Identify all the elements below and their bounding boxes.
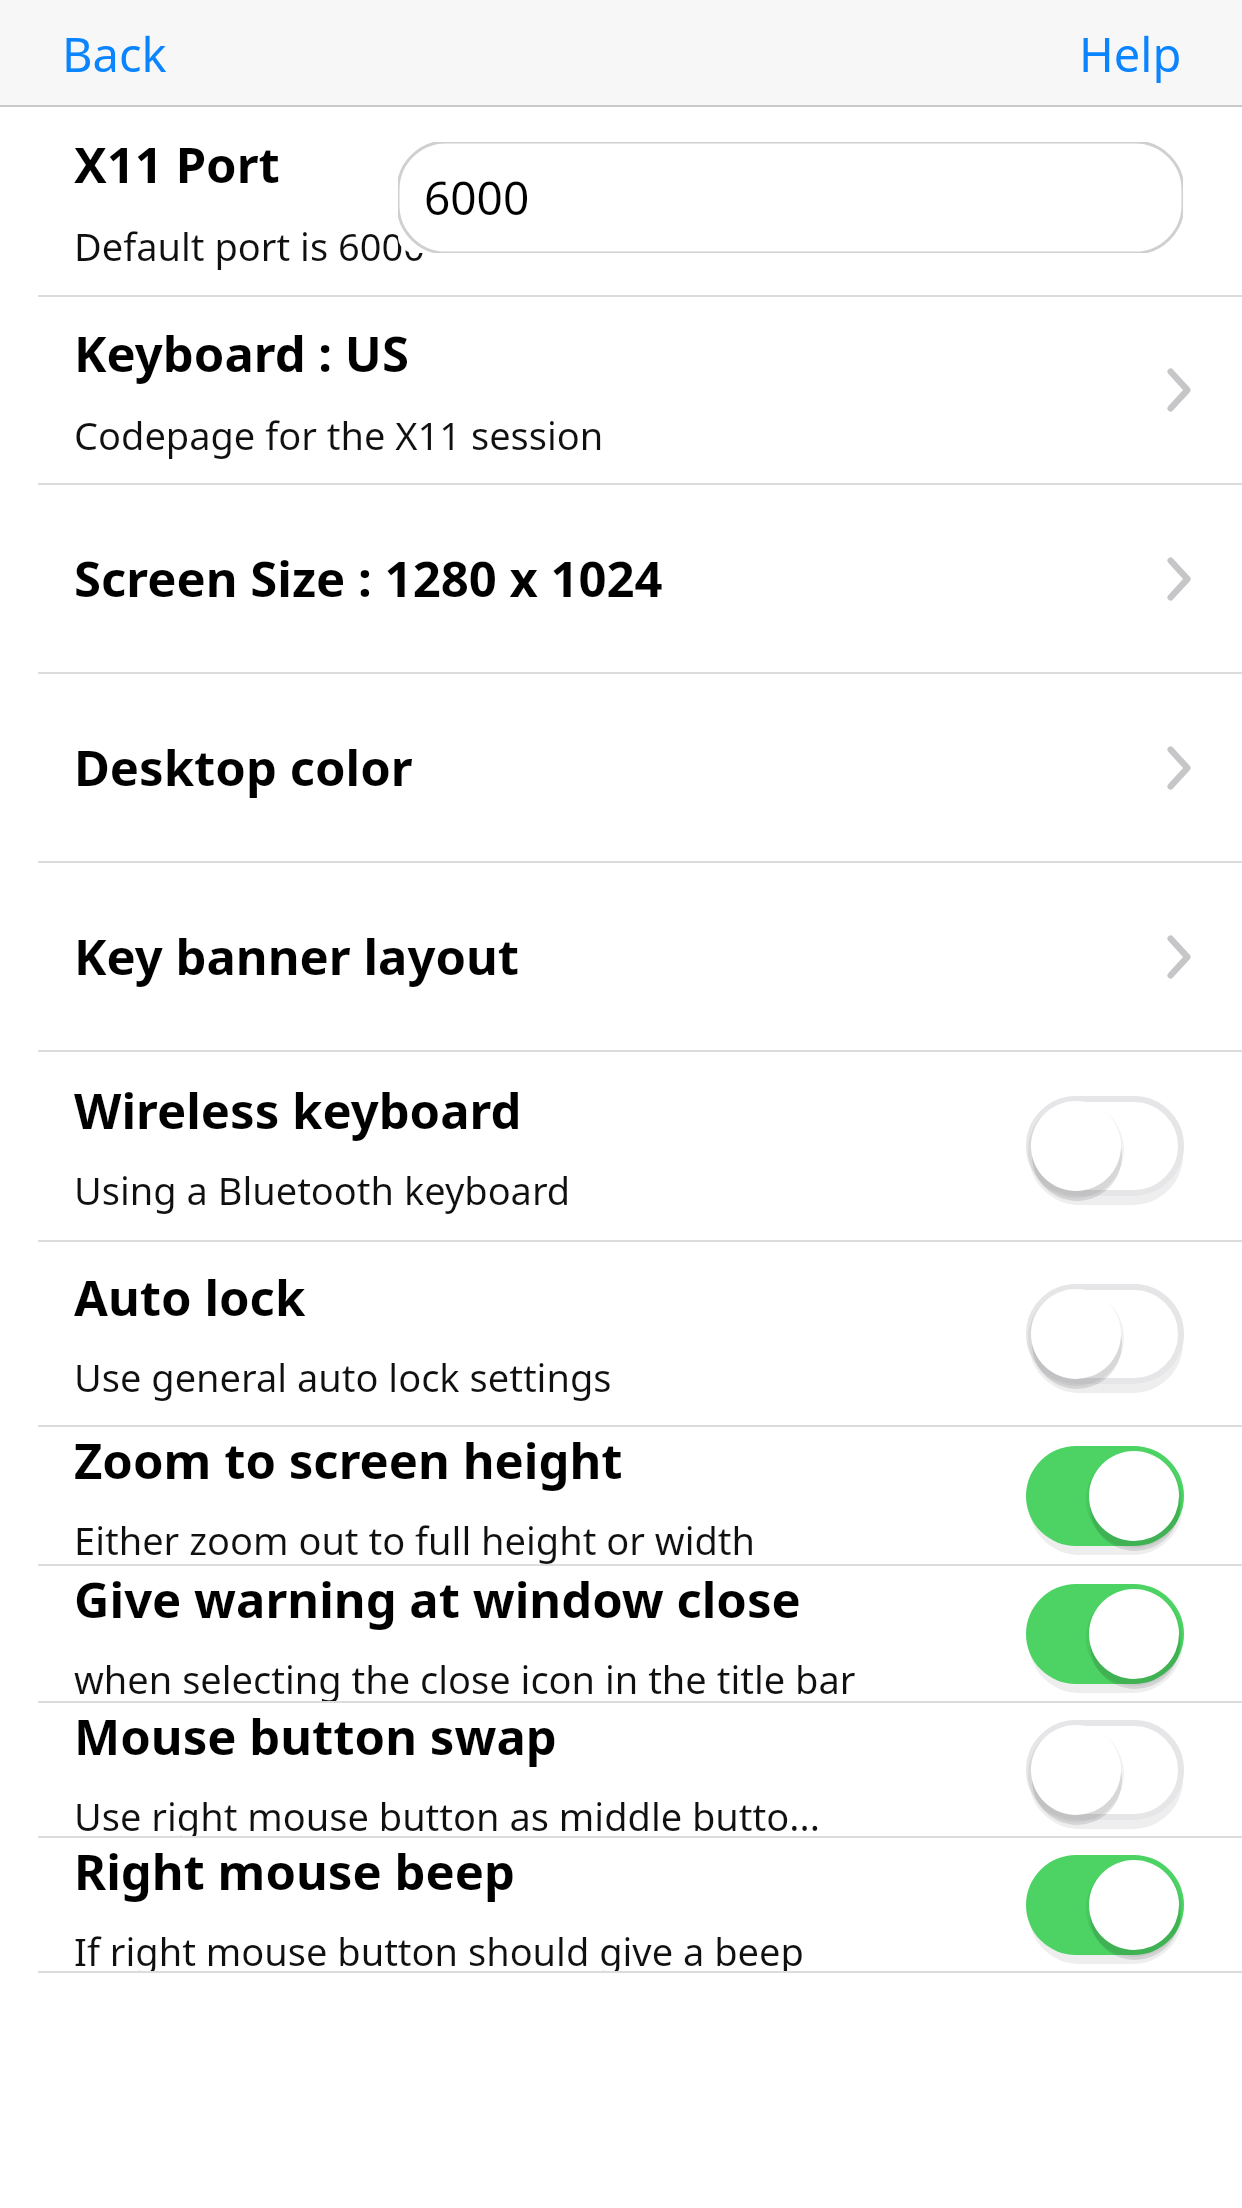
staticText: Desktop color [74, 734, 413, 801]
staticText: Keyboard : US [74, 320, 409, 387]
button[interactable]: Switch off [1026, 1712, 1184, 1828]
staticText: Either zoom out to full height or width [74, 1514, 756, 1564]
button[interactable]: Help [1053, 6, 1208, 102]
button[interactable]: Desktop color [0, 674, 1242, 861]
staticText: Help [1079, 22, 1182, 86]
button[interactable]: Wireless keyboard [0, 1052, 1242, 1240]
button[interactable]: 6000 [398, 142, 1183, 253]
button[interactable]: Switch off [1026, 1276, 1184, 1392]
staticText: Default port is 6000 [74, 220, 425, 272]
button[interactable]: Give warning at window close [0, 1566, 1242, 1701]
staticText: Auto lock [74, 1264, 306, 1331]
staticText: Use right mouse button as middle butto..… [74, 1790, 820, 1836]
staticText: Use general auto lock settings [74, 1351, 612, 1403]
staticText: Give warning at window close [74, 1566, 801, 1633]
staticText: Codepage for the X11 session [74, 409, 604, 461]
button[interactable]: Key banner layout [0, 863, 1242, 1050]
staticText: 6000 [424, 166, 530, 229]
button[interactable]: Switch on [1026, 1847, 1184, 1963]
staticText: X11 Port [74, 131, 280, 198]
button[interactable]: Switch off [1026, 1088, 1184, 1204]
staticText: If right mouse button should give a beep [74, 1925, 804, 1971]
button[interactable]: Switch on [1026, 1438, 1184, 1554]
staticText: Mouse button swap [74, 1703, 557, 1770]
button[interactable]: Switch on [1026, 1576, 1184, 1692]
button[interactable]: Screen Size : 1280 x 1024 [0, 485, 1242, 672]
button[interactable]: Auto lock [0, 1242, 1242, 1425]
staticText: Right mouse beep [74, 1838, 515, 1905]
staticText: Key banner layout [74, 923, 520, 990]
staticText: Using a Bluetooth keyboard [74, 1164, 571, 1216]
staticText: when selecting the close icon in the tit… [74, 1653, 856, 1701]
button[interactable]: Keyboard : US [0, 297, 1242, 483]
button[interactable]: Right mouse beep [0, 1838, 1242, 1971]
button[interactable]: Mouse button swap [0, 1703, 1242, 1836]
button[interactable]: Zoom to screen height [0, 1427, 1242, 1564]
staticText: Zoom to screen height [74, 1427, 623, 1494]
staticText: Screen Size : 1280 x 1024 [74, 545, 663, 612]
staticText: Back [62, 22, 167, 86]
staticText: Wireless keyboard [74, 1077, 522, 1144]
button[interactable]: Back [36, 6, 193, 102]
